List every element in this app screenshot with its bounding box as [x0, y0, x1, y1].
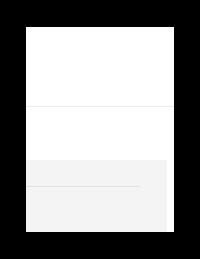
button[interactable]: [26, 27, 174, 232]
